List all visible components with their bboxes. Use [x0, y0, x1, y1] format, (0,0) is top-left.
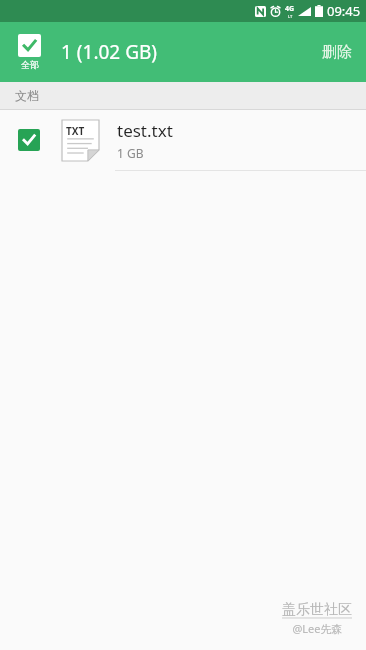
staticText: @Lee先森: [292, 621, 343, 636]
staticText: LT: [288, 14, 293, 19]
button[interactable]: 删除: [308, 33, 366, 72]
button[interactable]: Select all: [14, 32, 45, 72]
button[interactable]: Selected: [18, 129, 40, 151]
staticText: 删除: [322, 43, 352, 62]
staticText: 4G: [285, 4, 295, 14]
staticText: test.txt: [117, 119, 173, 142]
staticText: 盖乐世社区: [282, 601, 352, 619]
staticText: 1 GB: [117, 145, 144, 161]
staticText: 文档: [15, 88, 39, 103]
staticText: TXT: [66, 124, 85, 138]
staticText: 09:45: [327, 2, 361, 20]
staticText: 全部: [21, 59, 39, 70]
staticText: 1 (1.02 GB): [61, 39, 158, 65]
button[interactable]: Selected: [0, 110, 366, 171]
